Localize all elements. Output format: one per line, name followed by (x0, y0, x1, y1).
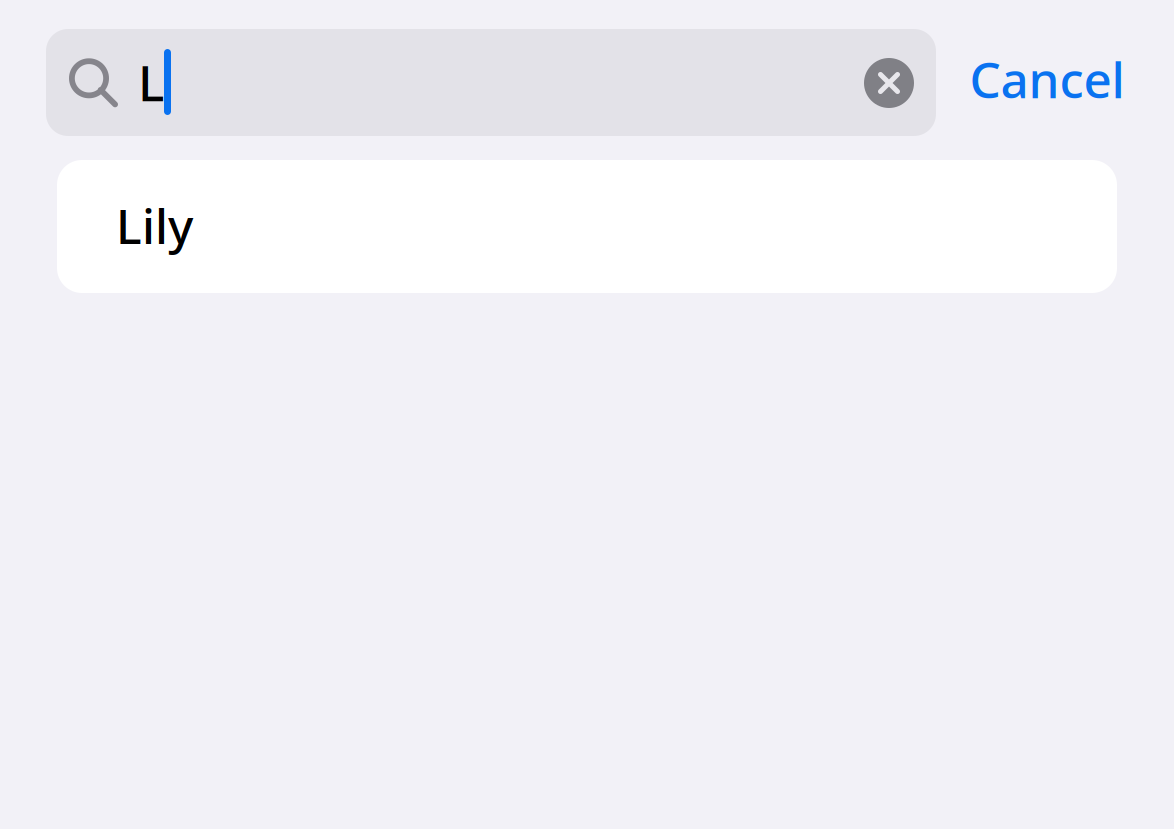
staticText: Cancel (969, 46, 1124, 112)
staticText: Lily (116, 194, 193, 257)
staticText: L (138, 49, 164, 115)
button[interactable]: Cancel (957, 25, 1137, 132)
button[interactable]: Clear text (846, 29, 932, 136)
button[interactable]: Search (46, 29, 936, 136)
button[interactable]: Lily (57, 160, 1117, 293)
